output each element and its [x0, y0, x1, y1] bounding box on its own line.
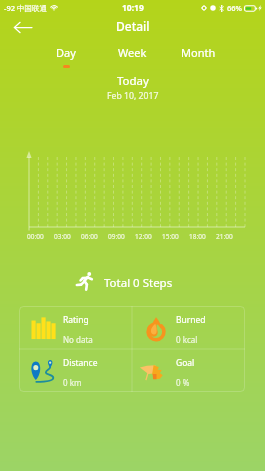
staticText: 09:00 [108, 232, 125, 241]
staticText: Feb 10, 2017 [107, 90, 159, 102]
staticText: 0 % [176, 377, 190, 388]
staticText: Week [118, 45, 147, 60]
staticText: 21:00 [216, 232, 233, 241]
staticText: Today [117, 73, 149, 89]
staticText: Day [56, 45, 76, 60]
staticText: 12:00 [135, 232, 152, 241]
staticText: No data [63, 334, 93, 345]
button[interactable]: Burned [132, 306, 245, 349]
button[interactable]: Week [99, 42, 165, 70]
button[interactable]: Distance [19, 349, 132, 392]
staticText: 10:19 [122, 2, 144, 14]
staticText: 15:00 [162, 232, 179, 241]
staticText: Goal [176, 357, 195, 369]
button[interactable]: Month [165, 42, 231, 70]
staticText: 66% [227, 3, 242, 13]
staticText: 0 kcal [176, 334, 198, 345]
staticText: Burned [176, 314, 206, 326]
staticText: Month [181, 45, 216, 60]
staticText: Total 0 Steps [104, 275, 173, 291]
button[interactable]: Goal [132, 349, 245, 392]
button[interactable]: Rating [19, 306, 132, 349]
staticText: Rating [63, 314, 89, 326]
button[interactable]: Day [33, 42, 99, 70]
staticText: 18:00 [189, 232, 206, 241]
button[interactable]: Back [0, 14, 44, 41]
staticText: 03:00 [54, 232, 71, 241]
staticText: Detail [116, 18, 150, 34]
staticText: 00:00 [27, 232, 44, 241]
staticText: Distance [63, 357, 98, 369]
staticText: -92 中国联通 [4, 3, 47, 13]
staticText: 06:00 [81, 232, 98, 241]
staticText: 0 km [63, 377, 82, 388]
